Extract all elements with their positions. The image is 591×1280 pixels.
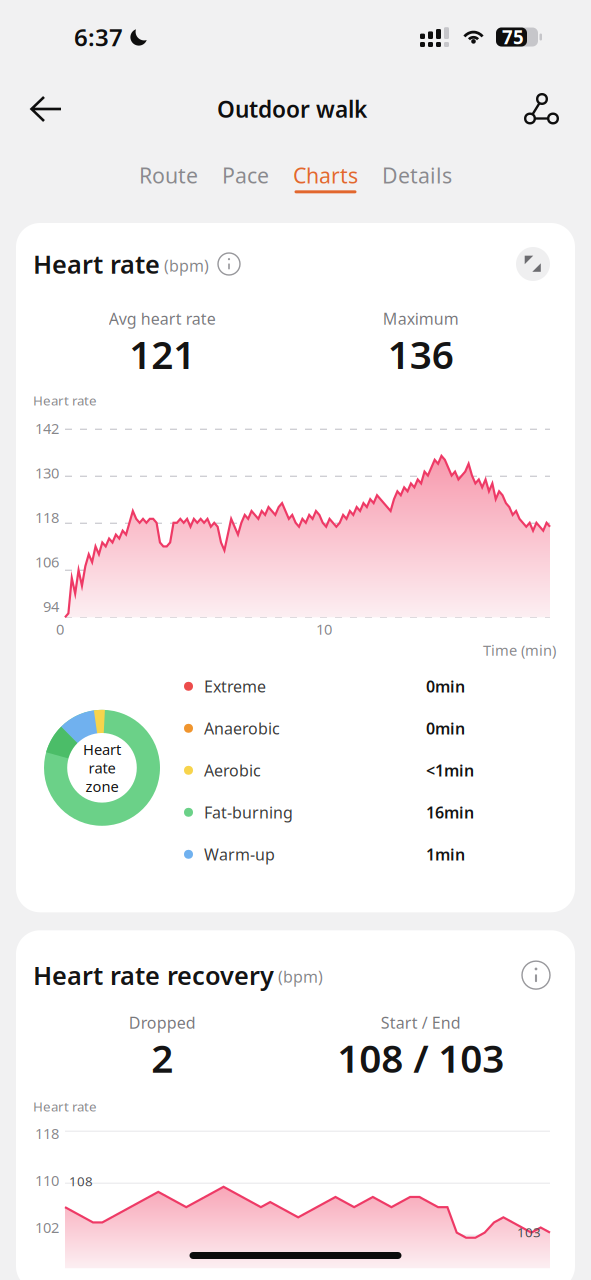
staticText: rate bbox=[88, 758, 115, 778]
button[interactable]: Back bbox=[18, 84, 74, 134]
staticText: Heart rate bbox=[33, 1097, 97, 1115]
staticText: Time (min) bbox=[483, 640, 556, 660]
staticText: Aerobic bbox=[204, 760, 261, 781]
staticText: 121 bbox=[129, 328, 195, 379]
staticText: Outdoor walk bbox=[217, 94, 367, 124]
staticText: Charts bbox=[293, 161, 358, 189]
staticText: Extreme bbox=[204, 676, 266, 697]
staticText: 118 bbox=[35, 508, 59, 527]
button[interactable]: Share bbox=[510, 81, 573, 136]
button[interactable]: Pace bbox=[210, 144, 281, 193]
staticText: 10 bbox=[316, 619, 332, 639]
staticText: 1min bbox=[426, 844, 465, 865]
button[interactable]: About heart rate recovery bbox=[522, 961, 550, 989]
staticText: 130 bbox=[35, 463, 59, 483]
staticText: 118 bbox=[35, 1123, 59, 1143]
staticText: zone bbox=[85, 776, 118, 796]
staticText: Heart rate bbox=[33, 247, 160, 281]
staticText: Fat-burning bbox=[204, 802, 293, 823]
staticText: 142 bbox=[35, 419, 59, 438]
staticText: Dropped bbox=[129, 1012, 196, 1033]
staticText: (bpm) bbox=[160, 255, 209, 276]
staticText: 6:37 bbox=[74, 21, 123, 53]
staticText: 102 bbox=[35, 1217, 59, 1237]
staticText: Warm-up bbox=[204, 844, 275, 865]
staticText: Pace bbox=[222, 161, 269, 189]
staticText: Heart bbox=[83, 740, 121, 759]
staticText: 136 bbox=[388, 328, 454, 379]
staticText: (bpm) bbox=[274, 966, 323, 987]
staticText: 0min bbox=[426, 676, 465, 697]
staticText: 0min bbox=[426, 718, 465, 739]
staticText: <1min bbox=[426, 760, 474, 781]
staticText: 106 bbox=[35, 552, 59, 572]
staticText: Heart rate bbox=[33, 392, 97, 409]
staticText: 2 bbox=[151, 1032, 173, 1083]
staticText: Anaerobic bbox=[204, 718, 280, 739]
staticText: 0 bbox=[56, 619, 64, 639]
staticText: Details bbox=[382, 161, 452, 189]
staticText: Heart rate recovery bbox=[33, 958, 274, 992]
staticText: 108 bbox=[69, 1172, 93, 1190]
button[interactable]: Expand chart bbox=[516, 247, 550, 281]
staticText: Route bbox=[139, 161, 198, 189]
staticText: Avg heart rate bbox=[109, 308, 216, 329]
staticText: 16min bbox=[426, 802, 474, 823]
staticText: 103 bbox=[517, 1223, 541, 1241]
staticText: Start / End bbox=[381, 1012, 461, 1033]
button[interactable]: Details bbox=[370, 144, 464, 193]
staticText: 75 bbox=[502, 25, 524, 49]
button[interactable]: Route bbox=[127, 144, 210, 193]
staticText: Maximum bbox=[383, 308, 459, 329]
staticText: 108 / 103 bbox=[337, 1032, 504, 1083]
staticText: 94 bbox=[43, 597, 59, 616]
staticText: 110 bbox=[35, 1170, 59, 1190]
button[interactable]: Charts bbox=[281, 144, 370, 193]
